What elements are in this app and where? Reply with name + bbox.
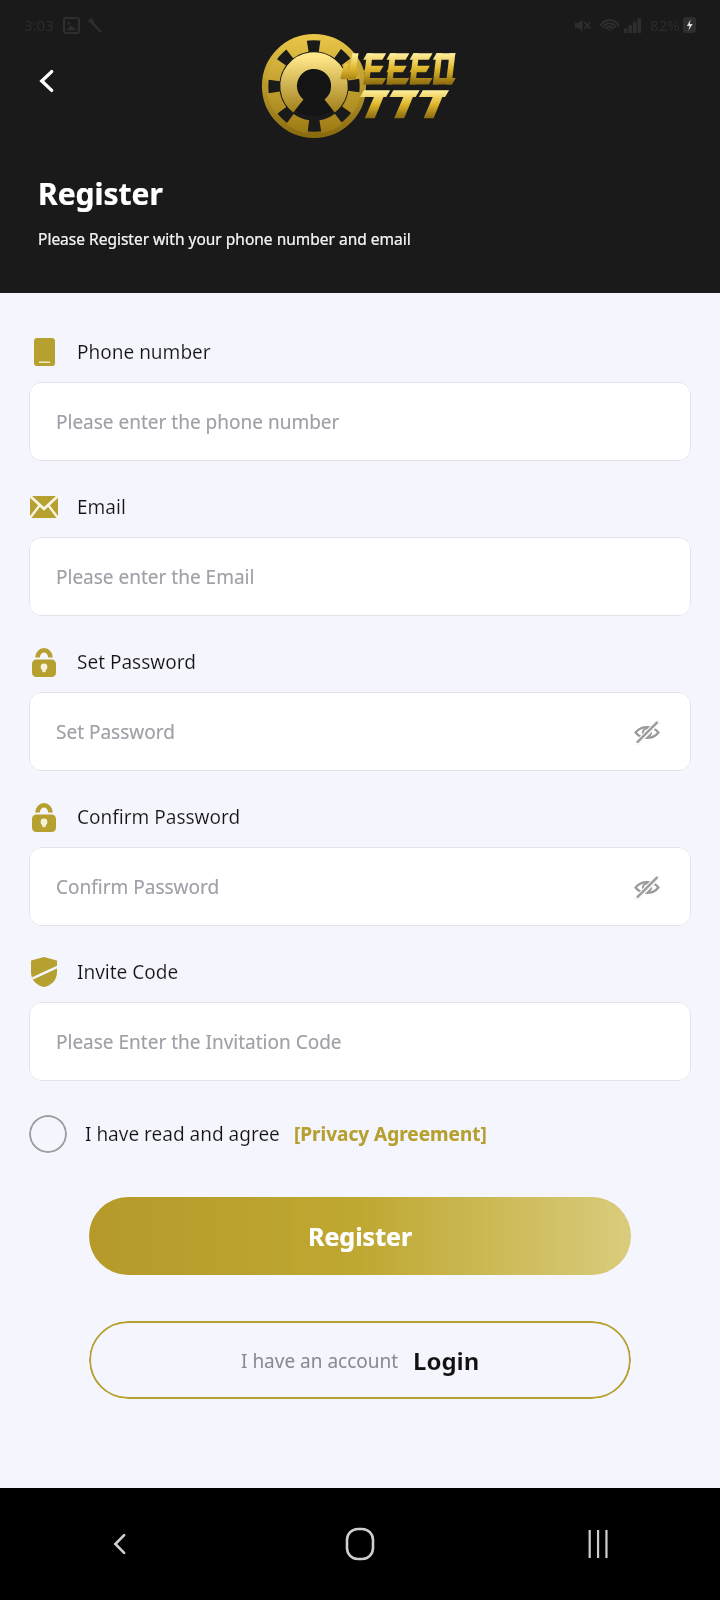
staticText: Register (308, 1219, 413, 1253)
staticText: 82% (650, 15, 680, 35)
staticText: 3:03 (24, 15, 54, 35)
button[interactable]: Please enter the phone number (29, 382, 691, 461)
staticText: I have read and agree (85, 1121, 280, 1147)
staticText: Set Password (56, 719, 630, 745)
button[interactable]: Please enter the Email (29, 537, 691, 616)
staticText: Set Password (77, 649, 196, 675)
staticText: Please Enter the Invitation Code (56, 1029, 664, 1055)
staticText: I have an account (241, 1348, 399, 1374)
staticText: Invite Code (77, 959, 179, 985)
staticText: Email (77, 494, 126, 520)
staticText: Please enter the Email (56, 564, 664, 590)
staticText: Login (413, 1344, 480, 1377)
staticText: Please enter the phone number (56, 409, 664, 435)
button[interactable]: I have read and agree (29, 1115, 691, 1153)
button[interactable]: Confirm Password (29, 847, 691, 926)
button[interactable]: I have an account (89, 1321, 631, 1399)
staticText: Register (38, 173, 163, 214)
button[interactable]: Recent apps (480, 1488, 720, 1600)
staticText: Confirm Password (56, 874, 630, 900)
staticText: Confirm Password (77, 804, 241, 830)
button[interactable]: Home (240, 1488, 480, 1600)
button[interactable]: Register (89, 1197, 631, 1275)
staticText: Please Register with your phone number a… (38, 228, 411, 249)
button[interactable]: Show password (630, 715, 664, 749)
button[interactable]: Back (24, 58, 70, 104)
button[interactable]: Back (0, 1488, 240, 1600)
button[interactable]: Set Password (29, 692, 691, 771)
button[interactable]: [Privacy Agreement] (294, 1121, 487, 1147)
button[interactable]: Show password (630, 870, 664, 904)
staticText: Phone number (77, 339, 211, 365)
button[interactable]: Please Enter the Invitation Code (29, 1002, 691, 1081)
